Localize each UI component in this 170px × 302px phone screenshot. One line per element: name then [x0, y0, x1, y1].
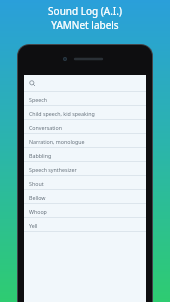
staticText: Child speech, kid speaking [29, 110, 95, 117]
button[interactable]: Whoop [24, 204, 146, 218]
staticText: Bellow [29, 194, 46, 201]
button[interactable]: Child speech, kid speaking [24, 106, 146, 120]
button[interactable]: Speech [24, 92, 146, 106]
staticText: Babbling [29, 152, 52, 159]
staticText: Yell [29, 222, 38, 229]
staticText: Sound Log (A.I.) [48, 4, 122, 18]
button[interactable]: Speech synthesizer [24, 162, 146, 176]
button[interactable]: Yell [24, 218, 146, 232]
staticText: YAMNet labels [51, 18, 119, 32]
button[interactable]: Conversation [24, 120, 146, 134]
staticText: Speech [29, 96, 47, 103]
button[interactable]: Narration, monologue [24, 134, 146, 148]
staticText: Shout [29, 180, 44, 187]
staticText: Narration, monologue [29, 138, 85, 145]
staticText: Speech synthesizer [29, 166, 77, 173]
button[interactable]: Shout [24, 176, 146, 190]
staticText: Whoop [29, 208, 47, 215]
button[interactable]: Bellow [24, 190, 146, 204]
button[interactable]: Babbling [24, 148, 146, 162]
button[interactable]: Search [24, 75, 146, 92]
staticText: Conversation [29, 124, 62, 131]
